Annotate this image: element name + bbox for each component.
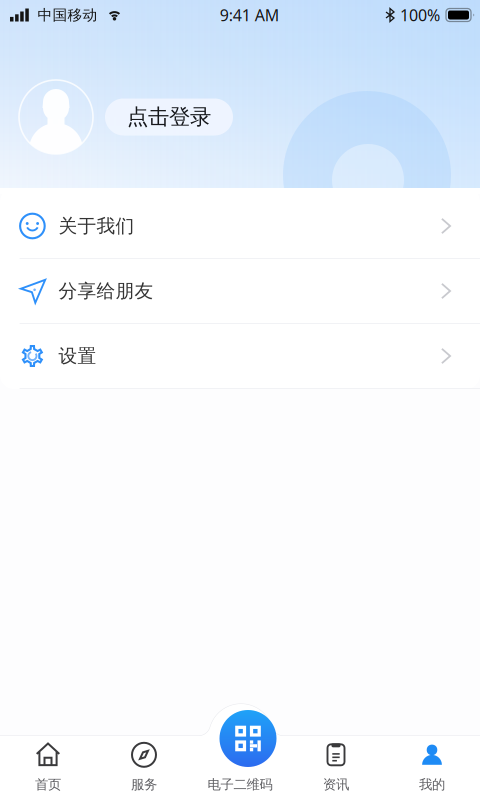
staticText: 9:41 AM	[220, 4, 280, 26]
button[interactable]: 资讯	[288, 734, 384, 800]
button[interactable]: 服务	[96, 734, 192, 800]
button[interactable]: 分享给朋友	[0, 259, 480, 324]
button[interactable]: 电子二维码	[192, 734, 288, 800]
staticText: 100%	[400, 4, 440, 26]
staticText: 设置	[59, 344, 97, 367]
staticText: 服务	[131, 776, 157, 793]
button[interactable]: 关于我们	[0, 194, 480, 259]
staticText: 关于我们	[59, 214, 135, 237]
button[interactable]: 点击登录	[105, 98, 233, 135]
button[interactable]: 电子二维码	[219, 710, 276, 767]
staticText: 点击登录	[127, 104, 211, 130]
staticText: 电子二维码	[207, 776, 272, 793]
button[interactable]: 设置	[0, 324, 480, 389]
button[interactable]: 首页	[0, 734, 96, 800]
button[interactable]: 我的	[384, 734, 480, 800]
staticText: 首页	[35, 776, 61, 793]
staticText: 分享给朋友	[59, 279, 154, 302]
staticText: 中国移动	[37, 6, 97, 24]
staticText: 我的	[419, 776, 445, 793]
staticText: 资讯	[323, 776, 349, 793]
